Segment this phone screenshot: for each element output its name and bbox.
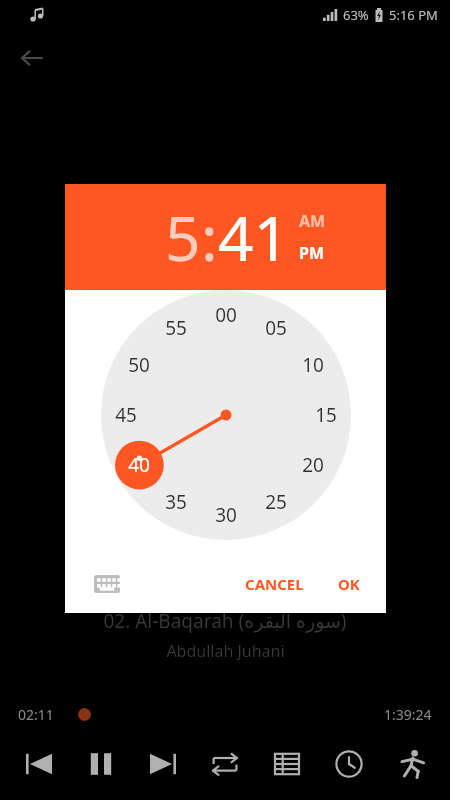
button[interactable]: Walk mode (388, 741, 434, 787)
staticText: 40 (128, 452, 150, 478)
button[interactable]: Pause (78, 741, 124, 787)
button[interactable]: Previous (16, 741, 62, 787)
button[interactable]: Next (140, 741, 186, 787)
button[interactable]: OK (330, 566, 368, 602)
button[interactable]: AM (299, 210, 326, 232)
staticText: 55 (165, 315, 187, 341)
staticText: 15 (315, 402, 337, 428)
button[interactable]: 5 (165, 195, 201, 279)
button[interactable]: Repeat (202, 741, 248, 787)
staticText: 00 (215, 302, 237, 328)
button[interactable]: Sleep timer (326, 741, 372, 787)
button[interactable]: Switch to keyboard input (87, 564, 127, 604)
button[interactable]: CANCEL (237, 566, 312, 602)
staticText: 35 (165, 489, 187, 515)
staticText: Abdullah Juhani (166, 640, 285, 662)
staticText: 05 (265, 315, 287, 341)
staticText: 02:11 (18, 705, 54, 724)
button[interactable]: Playlist (264, 741, 310, 787)
staticText: : (201, 195, 218, 279)
button[interactable]: Back (14, 40, 50, 76)
staticText: 50 (128, 352, 150, 378)
staticText: OK (338, 574, 360, 594)
button[interactable]: 00 (101, 290, 351, 540)
staticText: 45 (115, 402, 137, 428)
staticText: 25 (265, 489, 287, 515)
staticText: CANCEL (245, 574, 304, 594)
staticText: 20 (302, 452, 324, 478)
staticText: 02. Al-Baqarah (سوره البقره) (103, 608, 347, 634)
staticText: 30 (215, 502, 237, 528)
button[interactable]: PM (299, 242, 325, 264)
staticText: 63% (343, 6, 369, 24)
staticText: 10 (302, 352, 324, 378)
button[interactable]: 41 (218, 195, 289, 279)
staticText: 1:39:24 (384, 705, 432, 724)
staticText: 5:16 PM (389, 6, 438, 24)
